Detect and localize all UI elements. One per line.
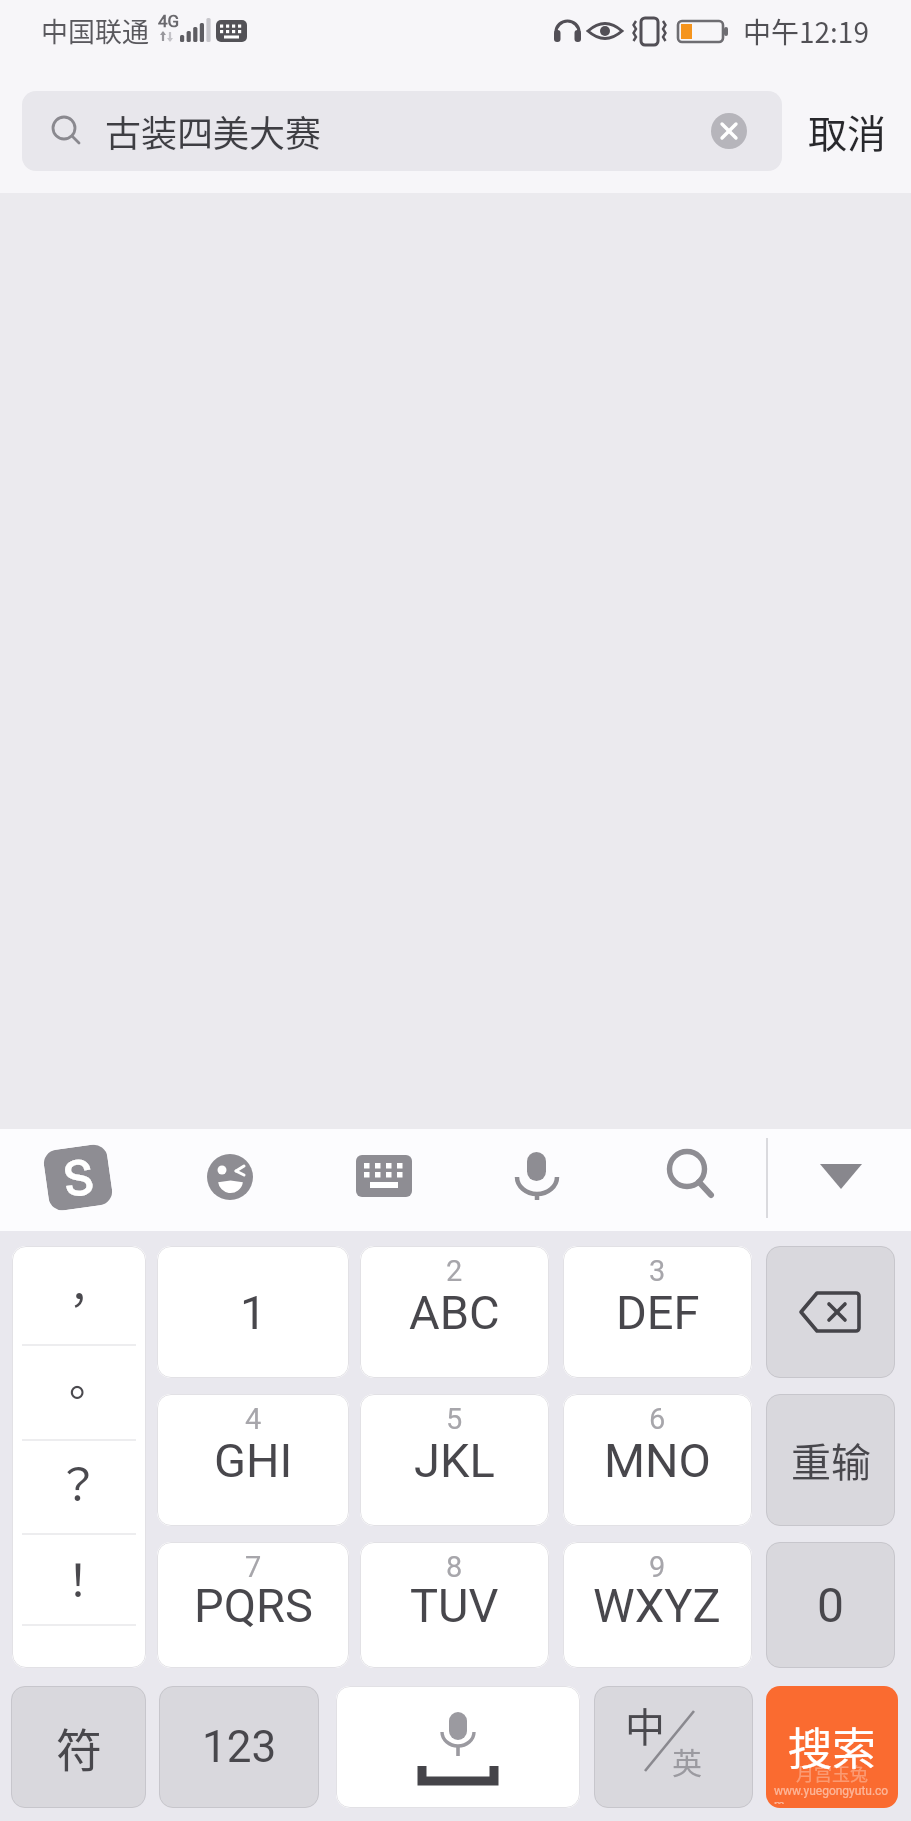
button[interactable]	[157, 1394, 349, 1526]
staticText: 7	[245, 1550, 262, 1584]
staticText: ！	[56, 1546, 100, 1606]
staticText: TUV	[410, 1578, 499, 1633]
staticText: 2	[446, 1254, 463, 1288]
staticText: 0	[817, 1577, 844, 1633]
staticText: 中国联通	[41, 11, 149, 50]
staticText: PQRS	[194, 1578, 313, 1633]
staticText: GHI	[214, 1433, 293, 1488]
button[interactable]	[594, 1686, 753, 1808]
button[interactable]	[360, 1246, 549, 1378]
staticText: 8	[446, 1550, 463, 1584]
staticText: 符	[56, 1714, 102, 1781]
staticText: 搜索	[788, 1714, 876, 1774]
button[interactable]: 符	[11, 1686, 146, 1808]
staticText: ABC	[409, 1285, 500, 1340]
button[interactable]	[157, 1246, 349, 1378]
button[interactable]	[336, 1686, 580, 1808]
staticText: 取消	[808, 103, 887, 159]
button[interactable]	[563, 1246, 752, 1378]
staticText: DEF	[616, 1285, 700, 1340]
staticText: 中	[625, 1696, 665, 1752]
button[interactable]	[711, 113, 747, 149]
staticText: 。	[69, 1347, 112, 1407]
button[interactable]	[12, 1246, 146, 1668]
button[interactable]	[205, 1152, 255, 1202]
staticText: S	[60, 1148, 97, 1208]
staticText: 古装四美大赛	[105, 105, 322, 157]
staticText: 中午12:19	[743, 11, 869, 52]
staticText: 4	[245, 1402, 262, 1436]
button[interactable]	[515, 1144, 561, 1200]
button[interactable]	[766, 1246, 895, 1378]
staticText: JKL	[414, 1433, 495, 1488]
staticText: ？	[56, 1450, 100, 1510]
button[interactable]: 0	[766, 1542, 895, 1668]
button[interactable]	[360, 1542, 549, 1668]
button[interactable]	[563, 1394, 752, 1526]
staticText: 9	[649, 1550, 666, 1584]
button[interactable]: S	[42, 1143, 114, 1212]
staticText: 月宫玉兔	[796, 1760, 868, 1786]
staticText: 6	[649, 1402, 666, 1436]
button[interactable]: 123	[159, 1686, 319, 1808]
button[interactable]	[157, 1542, 349, 1668]
staticText: 3	[649, 1254, 666, 1288]
button[interactable]	[806, 1150, 876, 1206]
button[interactable]	[356, 1155, 412, 1197]
staticText: 1	[240, 1285, 267, 1340]
staticText: 4G	[158, 11, 180, 31]
staticText: 123	[202, 1721, 277, 1773]
button[interactable]: 重输	[766, 1394, 895, 1526]
button[interactable]	[660, 1144, 716, 1200]
staticText: 英	[672, 1739, 702, 1782]
staticText: www.yuegongyutu.com	[774, 1784, 894, 1804]
staticText: 5	[446, 1402, 463, 1436]
staticText: WXYZ	[593, 1578, 721, 1633]
button[interactable]	[766, 1686, 898, 1808]
button[interactable]	[360, 1394, 549, 1526]
button[interactable]: 取消	[790, 95, 905, 167]
button[interactable]	[563, 1542, 752, 1668]
staticText: MNO	[604, 1433, 711, 1488]
staticText: 重输	[791, 1431, 871, 1489]
staticText: ，	[69, 1254, 112, 1314]
